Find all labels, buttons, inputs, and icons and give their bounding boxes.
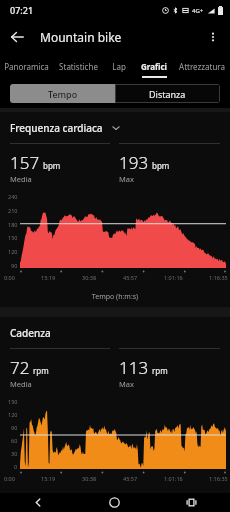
staticText: 90 xyxy=(11,424,18,431)
staticText: Distanza xyxy=(149,88,186,100)
staticText: 0 xyxy=(14,463,18,470)
button[interactable]: Grafici xyxy=(134,54,174,78)
staticText: rpm xyxy=(152,365,168,376)
staticText: 1:16:35 xyxy=(209,475,228,482)
staticText: Max xyxy=(119,379,134,389)
staticText: Max xyxy=(119,174,134,184)
staticText: 0:00 xyxy=(4,274,15,281)
staticText: 150 xyxy=(8,398,18,405)
staticText: 72 xyxy=(10,356,30,379)
staticText: 0:00 xyxy=(4,475,15,482)
staticText: 90 xyxy=(11,262,18,269)
staticText: 193 xyxy=(119,151,149,174)
staticText: 45:57 xyxy=(123,475,138,482)
staticText: 157 xyxy=(10,151,40,174)
staticText: Frequenza cardiaca xyxy=(10,121,103,135)
staticText: 30:38 xyxy=(82,475,97,482)
staticText: 30:38 xyxy=(82,274,97,281)
staticText: 45:57 xyxy=(123,274,138,281)
staticText: rpm xyxy=(33,365,49,376)
button[interactable]: Home xyxy=(76,493,153,512)
staticText: 30 xyxy=(11,450,18,457)
staticText: 15:19 xyxy=(41,274,56,281)
staticText: 60 xyxy=(11,437,18,444)
staticText: 120 xyxy=(8,248,18,255)
button[interactable]: Tempo xyxy=(10,84,115,103)
button[interactable]: Lap xyxy=(104,54,134,78)
staticText: 1:01:16 xyxy=(164,475,183,482)
staticText: bpm xyxy=(152,160,170,171)
staticText: 1:16:35 xyxy=(209,274,228,281)
staticText: Attrezzatura xyxy=(179,61,225,72)
staticText: 15:19 xyxy=(41,475,56,482)
staticText: bpm xyxy=(43,160,61,171)
button[interactable]: More options xyxy=(196,20,230,54)
staticText: 150 xyxy=(8,234,18,241)
staticText: Media xyxy=(10,379,32,389)
staticText: 120 xyxy=(8,411,18,418)
staticText: Panoramica xyxy=(4,61,49,72)
button[interactable]: Back xyxy=(0,20,34,54)
staticText: Mountain bike xyxy=(40,29,122,45)
staticText: Grafici xyxy=(141,61,167,72)
staticText: Cadenza xyxy=(10,326,51,340)
staticText: Media xyxy=(10,174,32,184)
staticText: 113 xyxy=(119,356,149,379)
staticText: 07:21 xyxy=(10,4,34,16)
button[interactable]: Recent apps xyxy=(153,493,230,512)
button[interactable]: Statistiche xyxy=(53,54,104,78)
staticText: 240 xyxy=(8,193,18,200)
button[interactable]: Attrezzatura xyxy=(174,54,230,78)
staticText: Tempo (h:m:s) xyxy=(0,292,230,302)
staticText: Statistiche xyxy=(59,61,98,72)
button[interactable]: Back xyxy=(0,493,76,512)
staticText: 180 xyxy=(8,221,18,228)
staticText: Lap xyxy=(112,61,126,72)
staticText: Tempo xyxy=(48,88,78,100)
button[interactable]: Expand xyxy=(110,122,122,134)
staticText: 210 xyxy=(8,207,18,214)
staticText: 4G+ xyxy=(192,7,204,15)
staticText: 1:01:16 xyxy=(164,274,183,281)
button[interactable]: Panoramica xyxy=(0,54,53,78)
button[interactable]: Distanza xyxy=(115,84,220,103)
